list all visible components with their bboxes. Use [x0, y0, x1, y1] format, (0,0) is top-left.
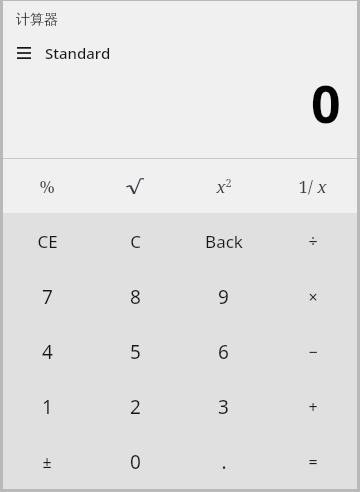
button[interactable]: 2 — [91, 379, 179, 434]
staticText: 3 — [218, 394, 229, 420]
button[interactable]: Menu — [3, 38, 357, 67]
staticText: x2 — [216, 175, 232, 198]
staticText: CE — [37, 230, 58, 253]
button[interactable]: 0 — [91, 434, 179, 489]
button[interactable]: 8 — [91, 269, 179, 324]
other: Menu — [17, 47, 31, 59]
button[interactable]: − — [268, 324, 357, 379]
button[interactable]: Percent — [3, 159, 91, 213]
staticText: 6 — [218, 339, 229, 365]
button[interactable]: 1 — [3, 379, 91, 434]
staticText: . — [221, 449, 227, 475]
button[interactable]: ÷ — [268, 213, 357, 269]
button[interactable]: Back — [179, 213, 268, 269]
button[interactable]: = — [268, 434, 357, 489]
button[interactable]: 4 — [3, 324, 91, 379]
staticText: 2 — [130, 394, 141, 420]
staticText: = — [308, 451, 318, 473]
staticText: 5 — [130, 339, 141, 365]
button[interactable]: 7 — [3, 269, 91, 324]
staticText: × — [308, 286, 318, 308]
button[interactable]: ± — [3, 434, 91, 489]
button[interactable]: 5 — [91, 324, 179, 379]
button[interactable]: x squared — [179, 159, 268, 213]
button[interactable]: Square root — [91, 159, 179, 213]
button[interactable]: 9 — [179, 269, 268, 324]
staticText: 8 — [130, 284, 141, 310]
staticText: 0 — [311, 67, 341, 134]
button[interactable]: 6 — [179, 324, 268, 379]
staticText: 计算器 — [16, 11, 58, 29]
staticText: Standard — [45, 43, 111, 63]
button[interactable]: + — [268, 379, 357, 434]
staticText: + — [308, 396, 318, 418]
staticText: − — [308, 341, 318, 363]
staticText: ± — [42, 451, 52, 473]
staticText: 1 — [42, 394, 53, 420]
button[interactable]: 3 — [179, 379, 268, 434]
staticText: 7 — [42, 284, 53, 310]
staticText: Back — [205, 230, 243, 253]
button[interactable]: . — [179, 434, 268, 489]
staticText: C — [130, 230, 141, 253]
staticText: % — [39, 175, 55, 198]
staticText: 0 — [130, 449, 141, 475]
button[interactable]: × — [268, 269, 357, 324]
button[interactable]: C — [91, 213, 179, 269]
staticText: 4 — [42, 339, 53, 365]
staticText: 9 — [218, 284, 229, 310]
staticText: ÷ — [308, 230, 318, 252]
button[interactable]: CE — [3, 213, 91, 269]
button[interactable]: One over x — [268, 159, 357, 213]
staticText: 1/ x — [298, 175, 327, 198]
